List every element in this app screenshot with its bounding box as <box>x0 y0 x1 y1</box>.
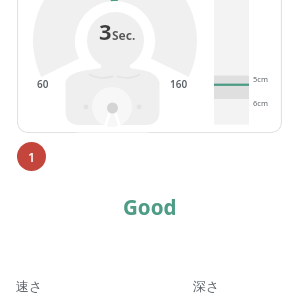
button[interactable]: 3 <box>17 0 282 133</box>
button[interactable]: 1 <box>17 142 46 171</box>
staticText: 3 <box>99 16 112 46</box>
staticText: 速さ <box>16 278 43 294</box>
staticText: 1 <box>28 148 36 166</box>
staticText: 60 <box>37 77 49 91</box>
staticText: 5cm <box>253 74 268 84</box>
staticText: 160 <box>170 77 188 91</box>
staticText: 深さ <box>193 278 220 294</box>
staticText: 6cm <box>253 98 268 108</box>
staticText: Good <box>123 193 177 221</box>
staticText: Sec. <box>112 27 136 43</box>
